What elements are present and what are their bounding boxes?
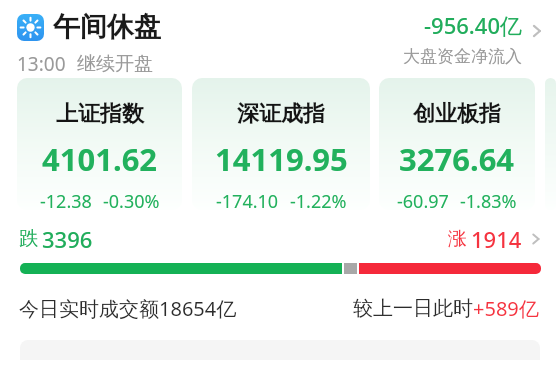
staticText: 上证指数 xyxy=(56,100,144,128)
button[interactable]: 深证成指 xyxy=(192,78,370,210)
staticText: 创业板指 xyxy=(413,100,501,128)
staticText: 深证成指 xyxy=(237,100,325,128)
staticText: 13:00 xyxy=(17,51,66,77)
staticText: 涨 xyxy=(448,227,467,251)
staticText: 3396 xyxy=(42,224,93,254)
staticText: -956.40亿 xyxy=(424,10,522,40)
staticText: 14119.95 xyxy=(215,138,348,180)
other: 市场状态 xyxy=(17,14,44,41)
button[interactable]: 创业板指 xyxy=(379,78,535,210)
staticText: -60.97 xyxy=(397,189,449,210)
staticText: -12.38 xyxy=(40,189,92,210)
staticText: 4101.62 xyxy=(42,138,158,180)
button[interactable]: 跌 xyxy=(19,224,544,254)
button[interactable]: 市场状态 xyxy=(0,0,556,78)
button[interactable]: 上证指数 xyxy=(17,78,182,210)
staticText: 继续开盘 xyxy=(77,52,153,76)
staticText: -1.83% xyxy=(460,189,517,210)
staticText: 大盘资金净流入 xyxy=(403,46,522,67)
button[interactable]: 查看大盘资金净流入 xyxy=(528,22,546,40)
staticText: -174.10 xyxy=(216,189,279,210)
staticText: 1914 xyxy=(471,224,522,254)
button[interactable] xyxy=(20,263,541,274)
staticText: 午间休盘 xyxy=(53,10,161,44)
staticText: -1.22% xyxy=(290,189,347,210)
staticText: 今日实时成交额18654亿 xyxy=(19,295,237,322)
staticText: 跌 xyxy=(19,227,38,251)
staticText: +589亿 xyxy=(473,295,539,322)
button[interactable] xyxy=(545,78,556,210)
staticText: -0.30% xyxy=(103,189,160,210)
staticText: 3276.64 xyxy=(399,138,515,180)
staticText: 较上一日此时 xyxy=(353,296,473,321)
button[interactable]: 今日实时成交额18654亿 xyxy=(19,295,539,322)
